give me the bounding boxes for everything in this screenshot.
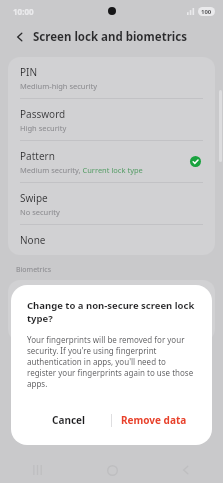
staticText: No security (20, 207, 60, 217)
button[interactable]: Back (11, 28, 29, 46)
button[interactable]: None (8, 225, 215, 255)
button[interactable]: Password (8, 99, 215, 140)
button[interactable]: Swipe (8, 183, 215, 224)
staticText: Screen lock and biometrics (33, 29, 187, 45)
button[interactable]: Face recognition (8, 280, 215, 310)
staticText: Swipe (20, 191, 48, 205)
staticText: High security (20, 123, 67, 133)
button[interactable]: Remove data (112, 405, 196, 435)
staticText: Biometrics (16, 265, 52, 275)
staticText: Your fingerprints will be removed for yo… (27, 334, 196, 389)
button[interactable]: Pattern (8, 141, 215, 182)
staticText: Password (20, 107, 66, 121)
button[interactable]: Cancel (27, 405, 111, 435)
staticText: Fingerprints (20, 319, 78, 333)
staticText: 100 (201, 8, 212, 16)
button[interactable]: Fingerprints (8, 311, 215, 341)
staticText: Remove data (121, 413, 187, 427)
staticText: 10:00 (13, 6, 34, 17)
staticText: Pattern (20, 149, 55, 163)
button[interactable]: PIN (8, 57, 215, 98)
staticText: Medium security, Current lock type (20, 165, 143, 175)
staticText: PIN (20, 65, 38, 79)
staticText: Cancel (52, 413, 86, 427)
staticText: Medium-high security (20, 81, 98, 91)
staticText: None (20, 233, 46, 247)
staticText: Change to a non-secure screen lock type? (27, 299, 196, 325)
